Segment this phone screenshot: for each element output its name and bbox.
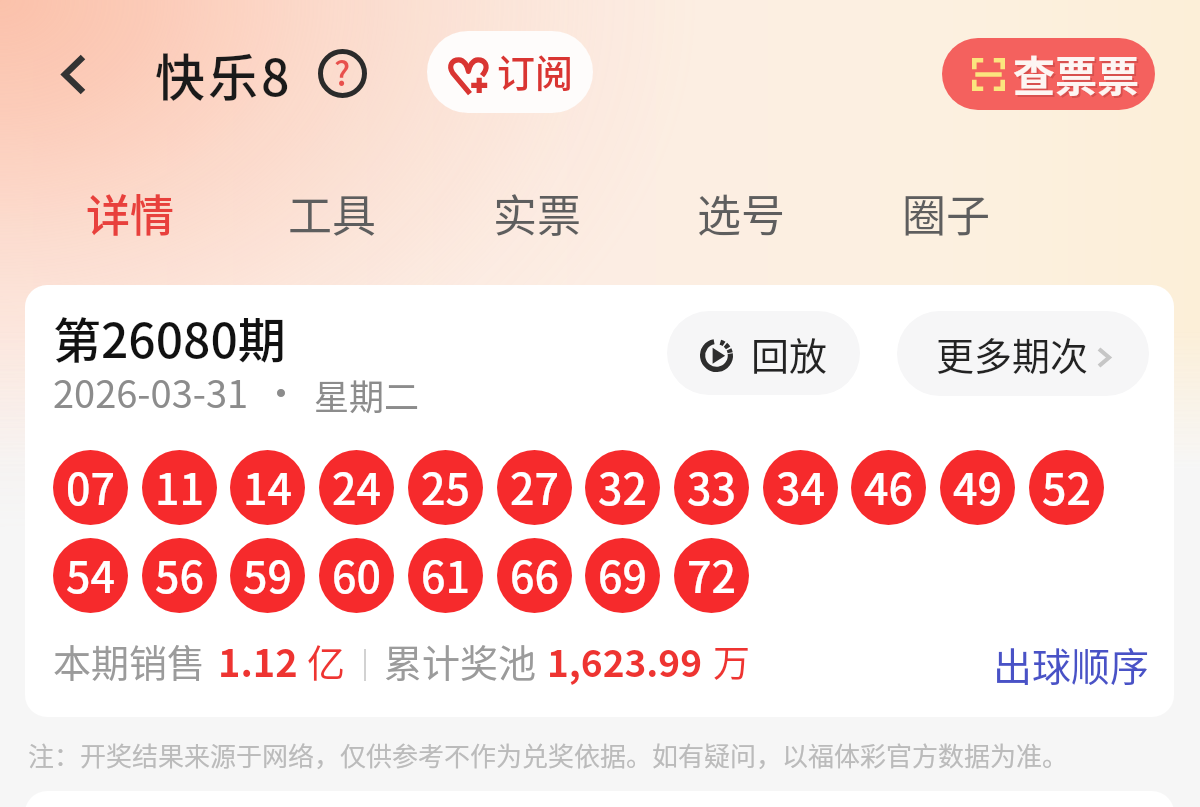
staticText: 万 bbox=[713, 634, 750, 688]
staticText: 星期二 bbox=[314, 369, 420, 420]
button[interactable]: 工具 bbox=[270, 178, 394, 248]
staticText: 详情 bbox=[86, 181, 174, 245]
staticText: 查票票 bbox=[1013, 43, 1140, 104]
button[interactable]: 订阅 bbox=[427, 31, 593, 113]
staticText: 60 bbox=[332, 543, 382, 605]
staticText: 46 bbox=[864, 455, 914, 517]
staticText: 27 bbox=[510, 455, 560, 517]
staticText: 第26080期 bbox=[53, 302, 286, 372]
button[interactable]: 详情 bbox=[68, 178, 192, 248]
staticText: 66 bbox=[510, 543, 560, 605]
button[interactable]: Back bbox=[39, 39, 109, 109]
staticText: 更多期次 bbox=[936, 326, 1089, 381]
staticText: 圈子 bbox=[902, 181, 990, 245]
button[interactable]: 更多期次 bbox=[897, 311, 1149, 396]
staticText: 查票票 bbox=[1015, 45, 1142, 106]
staticText: 亿 bbox=[307, 633, 346, 688]
staticText: 出球顺序 bbox=[993, 636, 1150, 692]
staticText: 注：开奖结果来源于网络，仅供参考不作为兑奖依据。如有疑问，以福体彩官方数据为准。 bbox=[28, 736, 1069, 774]
staticText: 72 bbox=[687, 543, 737, 605]
staticText: 1.12 bbox=[218, 633, 298, 688]
staticText: 14 bbox=[243, 455, 293, 517]
staticText: 工具 bbox=[288, 181, 376, 245]
staticText: 2026-03-31 bbox=[53, 364, 249, 419]
button[interactable]: 圈子 bbox=[884, 178, 1008, 248]
button[interactable]: 查票票 bbox=[942, 38, 1155, 110]
staticText: 59 bbox=[243, 543, 293, 605]
staticText: · bbox=[262, 363, 301, 418]
button[interactable]: 选号 bbox=[679, 178, 803, 248]
staticText: 69 bbox=[598, 543, 648, 605]
staticText: 订阅 bbox=[497, 43, 574, 98]
button[interactable]: Help bbox=[314, 45, 370, 101]
staticText: 1,623.99 bbox=[547, 634, 703, 688]
staticText: 11 bbox=[155, 455, 205, 517]
staticText: 实票 bbox=[493, 181, 581, 245]
staticText: 07 bbox=[66, 455, 116, 517]
staticText: 56 bbox=[155, 543, 205, 605]
staticText: 累计奖池 bbox=[384, 633, 537, 688]
staticText: 52 bbox=[1042, 455, 1092, 517]
staticText: 快乐8 bbox=[155, 38, 293, 110]
staticText: 本期销售 bbox=[53, 633, 206, 688]
staticText: 61 bbox=[421, 543, 471, 605]
staticText: 54 bbox=[66, 543, 116, 605]
staticText: 24 bbox=[332, 455, 382, 517]
staticText: 25 bbox=[421, 455, 471, 517]
staticText: 选号 bbox=[697, 181, 785, 245]
staticText: 49 bbox=[953, 455, 1003, 517]
staticText: 34 bbox=[776, 455, 826, 517]
button[interactable]: 出球顺序 bbox=[981, 625, 1161, 687]
staticText: 32 bbox=[598, 455, 648, 517]
staticText: ? bbox=[334, 48, 351, 96]
button[interactable]: 回放 bbox=[667, 311, 860, 395]
button[interactable]: 实票 bbox=[475, 178, 599, 248]
staticText: 33 bbox=[687, 455, 737, 517]
staticText: 回放 bbox=[751, 326, 828, 381]
